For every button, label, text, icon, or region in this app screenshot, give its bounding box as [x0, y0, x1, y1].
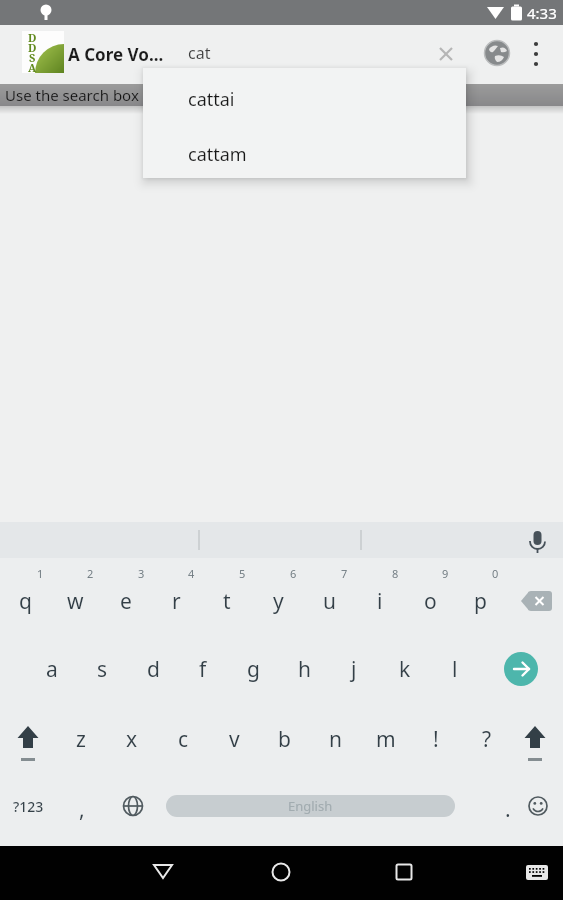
staticText: n — [329, 725, 342, 754]
staticText: y — [273, 587, 284, 616]
button[interactable]: v — [210, 717, 258, 761]
staticText: 6 — [290, 566, 297, 581]
staticText: 4 — [188, 566, 195, 581]
staticText: 4:33 — [527, 3, 557, 23]
staticText: English — [288, 797, 333, 815]
button[interactable]: h — [280, 647, 328, 691]
staticText: Use the search box to find — [5, 85, 189, 105]
staticText: b — [278, 725, 291, 754]
button[interactable] — [483, 40, 511, 68]
button[interactable]: . — [484, 787, 532, 831]
button[interactable]: k — [381, 647, 429, 691]
button[interactable]: ? — [463, 717, 511, 761]
button[interactable]: cattai — [143, 68, 466, 123]
button[interactable]: n — [311, 717, 359, 761]
button[interactable]: u — [305, 579, 353, 623]
staticText: x — [126, 725, 138, 754]
staticText: k — [399, 655, 411, 684]
staticText: m — [376, 725, 396, 754]
button[interactable] — [113, 786, 153, 826]
staticText: l — [452, 655, 458, 684]
staticText: j — [351, 655, 357, 684]
staticText: ! — [433, 725, 439, 754]
staticText: f — [199, 655, 207, 684]
staticText: cat — [188, 42, 211, 64]
button[interactable] — [261, 852, 301, 892]
staticText: q — [19, 587, 32, 616]
staticText: 5 — [239, 566, 246, 581]
staticText: 9 — [442, 566, 449, 581]
staticText: o — [424, 587, 437, 616]
staticText: 3 — [138, 566, 145, 581]
staticText: t — [223, 587, 231, 616]
button[interactable]: a — [28, 647, 76, 691]
button[interactable]: g — [229, 647, 277, 691]
button[interactable] — [504, 652, 538, 686]
button[interactable] — [384, 852, 424, 892]
button[interactable]: l — [431, 647, 479, 691]
staticText: c — [178, 725, 189, 754]
button[interactable] — [6, 720, 50, 768]
button[interactable]: ?123 — [4, 784, 52, 828]
staticText: 7 — [341, 566, 348, 581]
staticText: a — [46, 655, 58, 684]
button[interactable]: r — [152, 579, 200, 623]
button[interactable]: s — [78, 647, 126, 691]
staticText: A — [28, 60, 37, 73]
staticText: e — [120, 587, 132, 616]
button[interactable]: i — [356, 579, 404, 623]
staticText: D — [28, 30, 37, 43]
button[interactable]: o — [406, 579, 454, 623]
button[interactable]: ! — [412, 717, 460, 761]
staticText: p — [474, 587, 487, 616]
staticText: 2 — [87, 566, 94, 581]
staticText: , — [79, 795, 85, 824]
button[interactable] — [143, 851, 183, 891]
staticText: w — [67, 587, 84, 616]
button[interactable] — [513, 720, 557, 768]
button[interactable]: English — [166, 795, 455, 817]
button[interactable]: b — [260, 717, 308, 761]
staticText: g — [247, 655, 260, 684]
staticText: A Core Vo... — [68, 43, 164, 66]
button[interactable]: c — [159, 717, 207, 761]
button[interactable]: w — [51, 579, 99, 623]
staticText: S — [29, 50, 36, 63]
button[interactable]: y — [254, 579, 302, 623]
staticText: d — [147, 655, 160, 684]
staticText: 0 — [492, 566, 499, 581]
button[interactable]: D — [22, 31, 64, 73]
staticText: z — [76, 725, 86, 754]
button[interactable]: q — [1, 579, 49, 623]
button[interactable]: d — [129, 647, 177, 691]
staticText: ? — [482, 725, 492, 754]
staticText: ?123 — [13, 797, 44, 816]
staticText: i — [377, 587, 383, 616]
button[interactable]: cattam — [143, 123, 466, 178]
staticText: v — [229, 725, 240, 754]
button[interactable]: t — [203, 579, 251, 623]
staticText: D — [28, 40, 37, 53]
staticText: h — [298, 655, 311, 684]
button[interactable] — [432, 40, 460, 68]
staticText: cattai — [188, 87, 235, 112]
button[interactable]: j — [330, 647, 378, 691]
button[interactable]: x — [108, 717, 156, 761]
staticText: . — [505, 795, 511, 824]
staticText: r — [172, 587, 181, 616]
button[interactable]: p — [456, 579, 504, 623]
staticText: 8 — [392, 566, 399, 581]
button[interactable] — [517, 852, 557, 892]
button[interactable] — [518, 786, 558, 826]
button[interactable]: e — [102, 579, 150, 623]
button[interactable]: f — [179, 647, 227, 691]
button[interactable] — [524, 40, 548, 68]
button[interactable]: m — [362, 717, 410, 761]
staticText: cattam — [188, 142, 247, 167]
button[interactable]: , — [58, 787, 106, 831]
staticText: s — [97, 655, 108, 684]
staticText: u — [323, 587, 336, 616]
staticText: 1 — [37, 566, 44, 581]
button[interactable]: z — [57, 717, 105, 761]
button[interactable] — [508, 580, 563, 622]
